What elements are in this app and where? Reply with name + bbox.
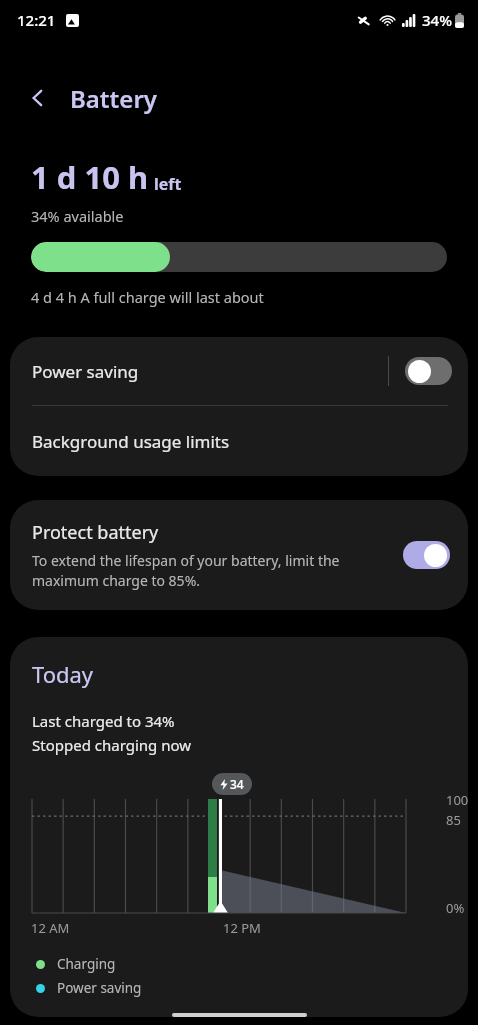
button[interactable]: Protect battery xyxy=(10,500,468,610)
staticText: 34% xyxy=(422,10,452,30)
staticText: 12:21 xyxy=(17,10,56,30)
staticText: Stopped charging now xyxy=(32,735,192,755)
staticText: Battery xyxy=(70,82,157,115)
button[interactable]: Power saving xyxy=(10,337,468,405)
button[interactable]: Today xyxy=(10,637,468,1017)
staticText: 0% xyxy=(446,899,465,917)
staticText: 34 xyxy=(230,776,244,792)
button[interactable]: Background usage limits xyxy=(10,406,468,476)
staticText: 100 xyxy=(446,791,468,809)
staticText: Protect battery xyxy=(32,520,159,545)
staticText: 34% available xyxy=(31,206,124,226)
staticText: left xyxy=(154,173,182,195)
staticText: Today xyxy=(32,659,94,689)
staticText: Background usage limits xyxy=(32,430,230,453)
staticText: Last charged to 34% xyxy=(32,711,175,731)
staticText: 12 PM xyxy=(223,919,261,937)
staticText: 12 AM xyxy=(31,919,70,937)
staticText: Power saving xyxy=(32,360,388,383)
staticText: 4 d 4 h A full charge will last about xyxy=(31,287,264,307)
staticText: Charging xyxy=(57,955,116,973)
staticText: 1 d 10 h xyxy=(31,156,149,198)
button[interactable]: Back xyxy=(18,78,58,118)
button[interactable]: Power saving toggle xyxy=(405,357,452,385)
staticText: 85 xyxy=(446,811,461,829)
staticText: To extend the lifespan of your battery, … xyxy=(32,551,391,590)
staticText: Power saving xyxy=(57,979,142,997)
button[interactable]: Protect battery toggle xyxy=(403,541,450,569)
